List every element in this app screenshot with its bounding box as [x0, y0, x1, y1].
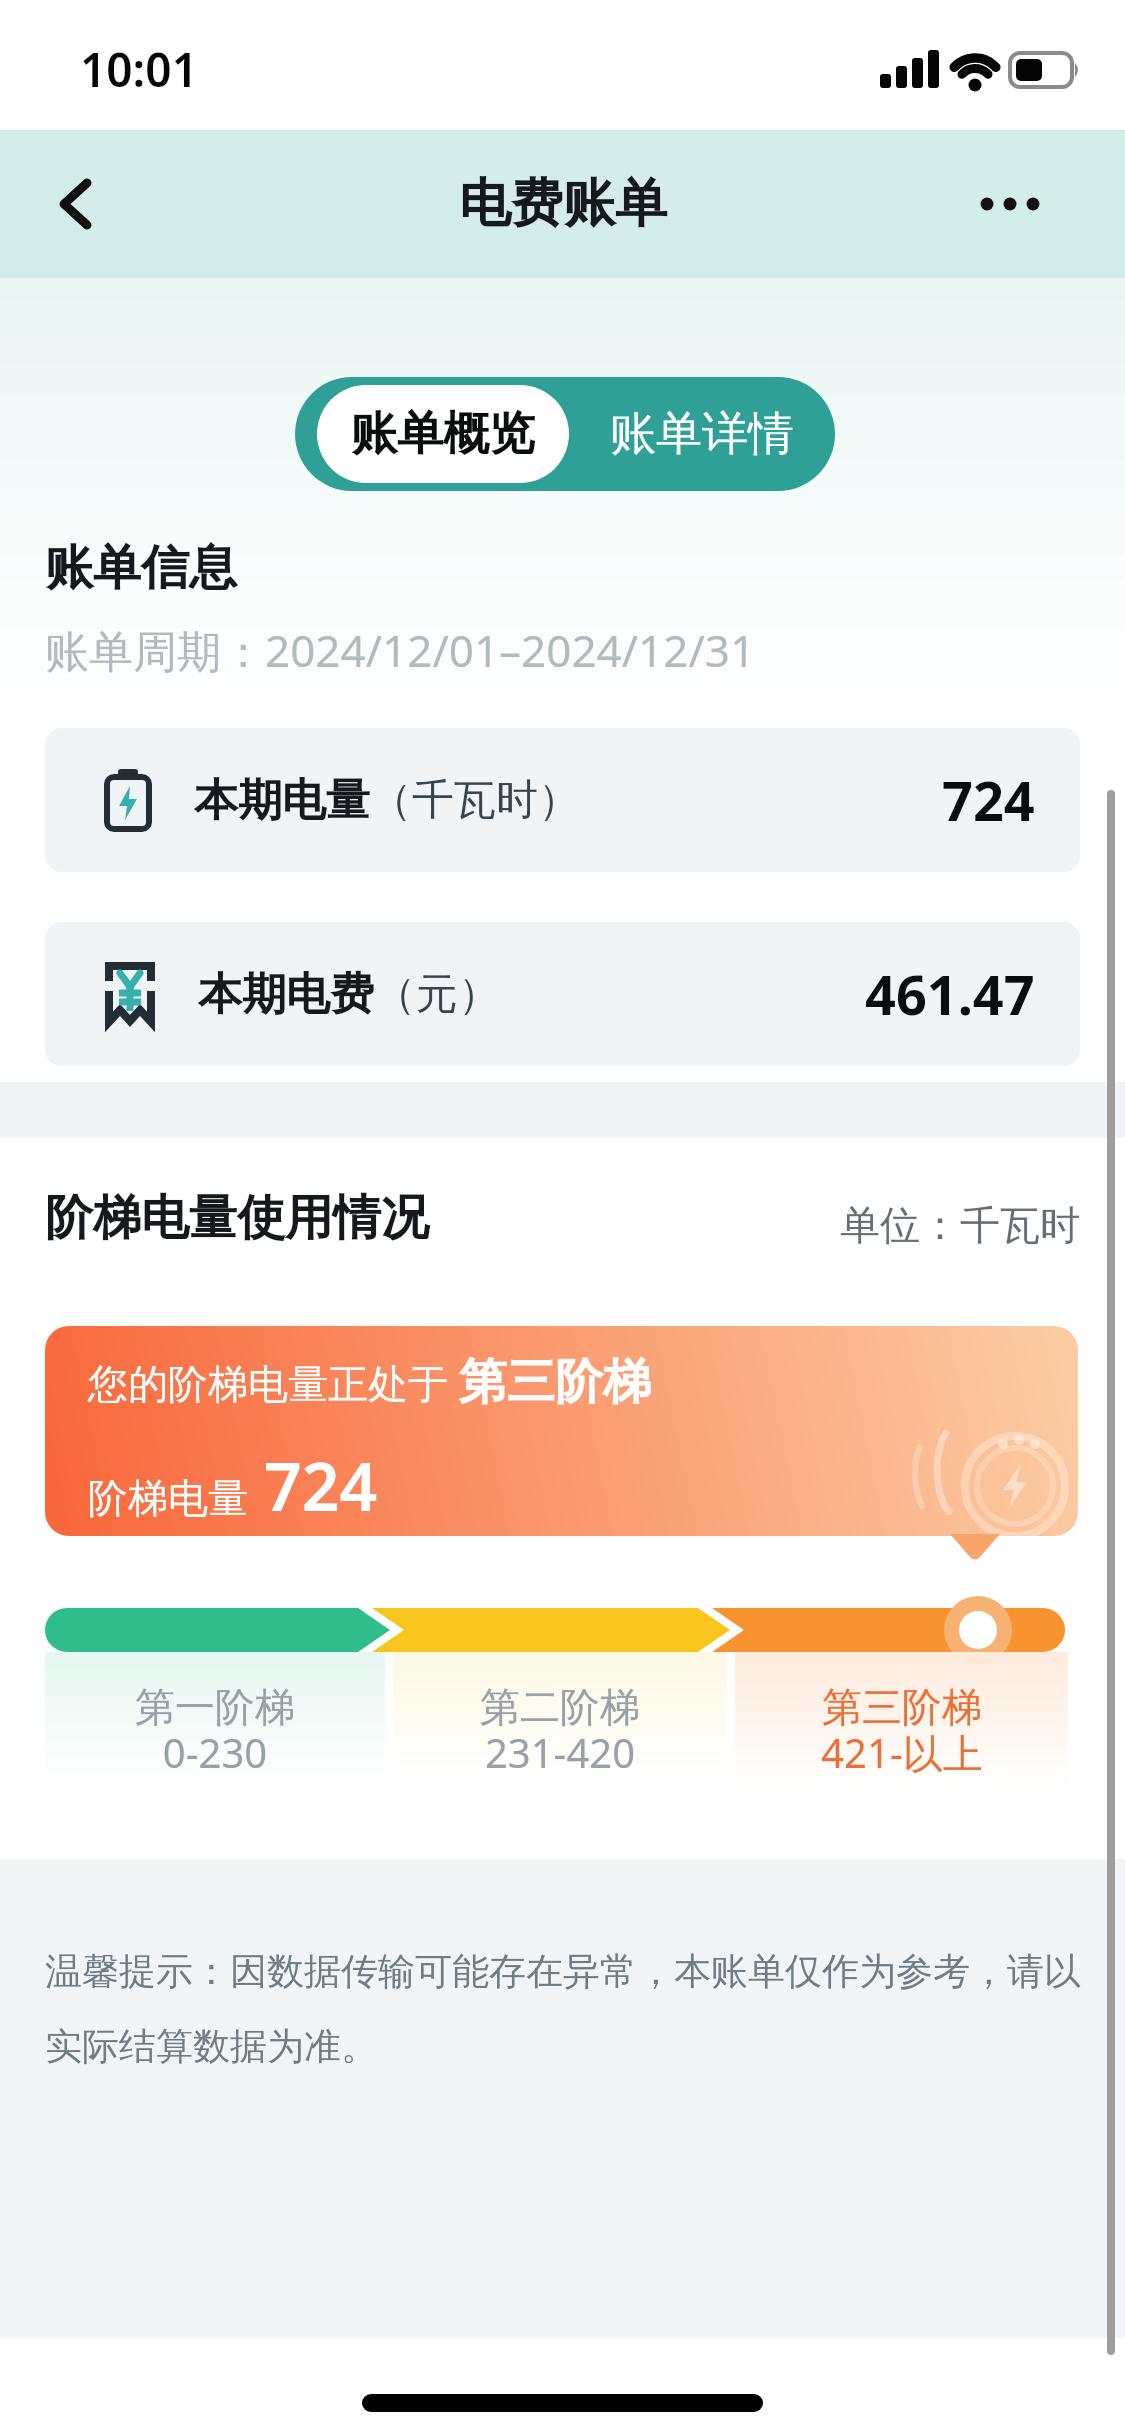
- staticText: （千瓦时）: [370, 774, 580, 827]
- staticText: （元）: [374, 968, 500, 1021]
- staticText: 461.47: [865, 957, 1035, 1031]
- staticText: 本期电量: [194, 773, 370, 828]
- button[interactable]: 账单详情: [569, 377, 835, 491]
- staticText: 第一阶梯 0-230: [135, 1682, 295, 1780]
- staticText: 账单概览: [351, 405, 535, 463]
- button[interactable]: 本期电费: [45, 922, 1080, 1066]
- staticText: 第二阶梯 231-420: [480, 1682, 640, 1780]
- button[interactable]: [965, 174, 1055, 234]
- staticText: 第三阶梯: [459, 1352, 651, 1412]
- button[interactable]: [40, 169, 110, 239]
- button[interactable]: 您的阶梯电量正处于: [45, 1326, 1078, 1536]
- staticText: 您的阶梯电量正处于: [88, 1355, 459, 1410]
- staticText: 账单周期：2024/12/01–2024/12/31: [45, 620, 756, 680]
- staticText: 本期电费: [198, 967, 374, 1022]
- staticText: 第三阶梯 421-以上: [821, 1682, 983, 1780]
- staticText: 账单信息: [45, 538, 237, 598]
- staticText: 阶梯电量使用情况: [45, 1188, 429, 1248]
- staticText: 724: [942, 763, 1035, 837]
- staticText: 账单详情: [610, 405, 794, 463]
- staticText: 10:01: [80, 38, 198, 101]
- button[interactable]: 本期电量: [45, 728, 1080, 872]
- staticText: 单位：千瓦时: [840, 1200, 1080, 1250]
- button[interactable]: 账单概览: [317, 385, 569, 483]
- staticText: 温馨提示：因数据传输可能存在异常，本账单仅作为参考，请以 实际结算数据为准。: [45, 1948, 1081, 2070]
- staticText: 724: [264, 1440, 378, 1530]
- staticText: 电费账单: [459, 171, 667, 237]
- staticText: 阶梯电量: [88, 1473, 248, 1523]
